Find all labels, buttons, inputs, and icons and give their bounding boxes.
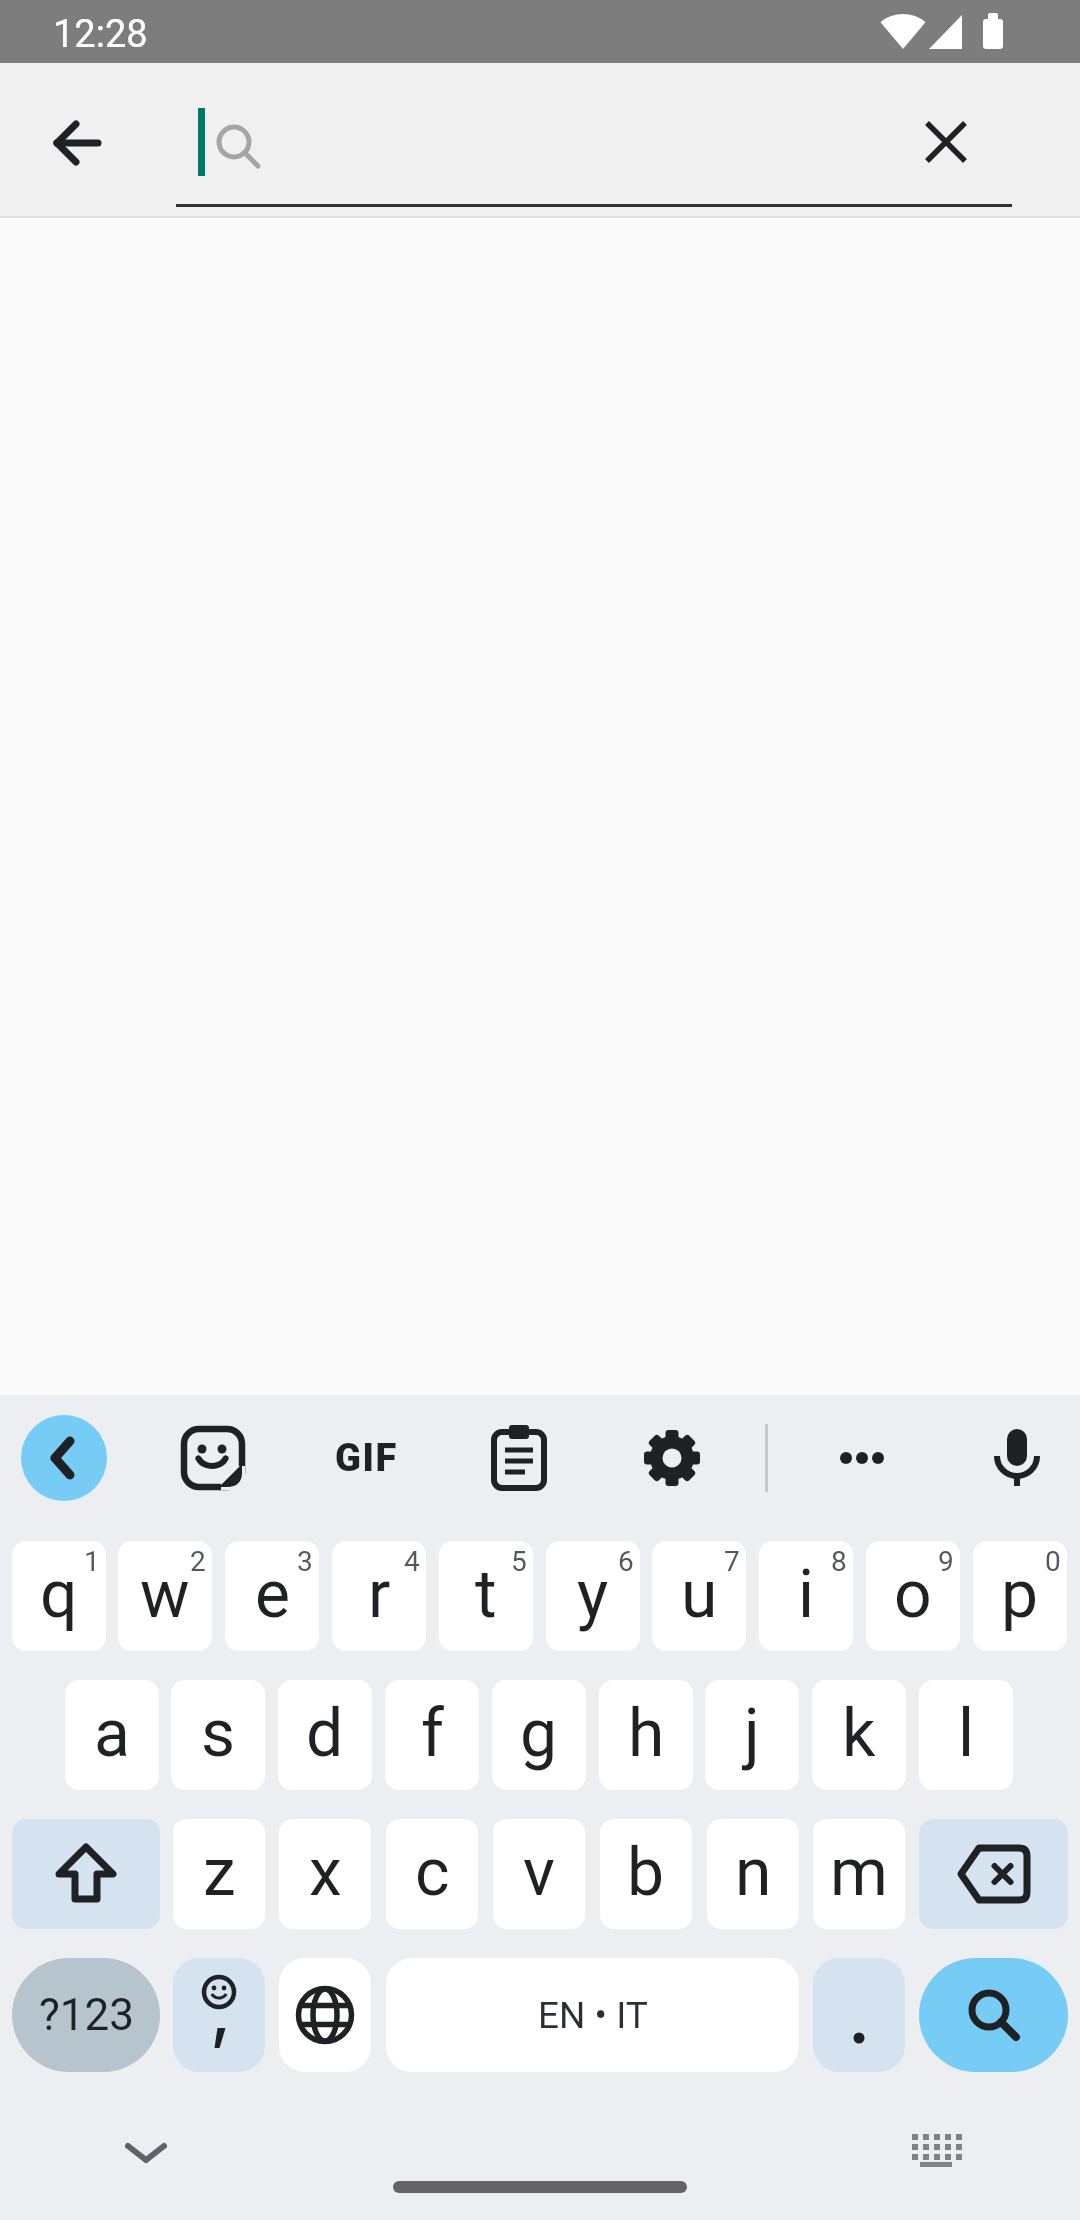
staticText: u [681,1556,718,1633]
button[interactable] [33,99,121,187]
button[interactable]: z [173,1819,265,1929]
staticText: d [306,1695,344,1772]
button[interactable]: g [492,1680,586,1790]
button[interactable] [640,1426,704,1490]
button[interactable] [813,1958,905,2072]
button[interactable]: GIF [316,1418,416,1498]
staticText: t [475,1556,497,1633]
button[interactable]: q [12,1541,106,1651]
button[interactable]: i [759,1541,853,1651]
staticText: r [368,1556,391,1633]
button[interactable]: u [652,1541,746,1651]
staticText: w [140,1556,190,1633]
button[interactable]: b [600,1819,692,1929]
button[interactable]: x [279,1819,371,1929]
button[interactable]: s [171,1680,265,1790]
button[interactable]: k [812,1680,906,1790]
staticText: e [255,1556,290,1633]
button[interactable] [110,2126,182,2178]
staticText: l [958,1695,975,1772]
staticText: c [415,1834,450,1911]
staticText: 7 [724,1545,740,1578]
staticText: 6 [618,1545,634,1578]
button[interactable] [173,1958,265,2072]
staticText: i [798,1556,815,1633]
staticText: 5 [511,1545,527,1578]
button[interactable] [901,97,991,187]
button[interactable] [181,1426,245,1490]
staticText: EN • IT [538,1994,648,2037]
staticText: 2 [190,1545,206,1578]
button[interactable]: r [332,1541,426,1651]
button[interactable]: o [866,1541,960,1651]
button[interactable] [919,1819,1068,1929]
staticText: m [830,1834,888,1911]
staticText: f [421,1695,444,1772]
staticText: h [628,1695,665,1772]
staticText: 3 [297,1545,313,1578]
button[interactable]: f [385,1680,479,1790]
staticText: a [94,1695,130,1772]
staticText: k [842,1695,876,1772]
staticText: 9 [938,1545,954,1578]
button[interactable] [279,1958,371,2072]
button[interactable]: y [546,1541,640,1651]
staticText: j [744,1695,760,1772]
button[interactable]: ?123 [12,1958,160,2072]
staticText: ?123 [39,1989,134,2041]
button[interactable]: t [439,1541,533,1651]
button[interactable]: h [599,1680,693,1790]
button[interactable]: p [973,1541,1067,1651]
staticText: 12:28 [53,12,148,57]
button[interactable] [12,1819,160,1929]
button[interactable] [821,1428,901,1488]
staticText: g [520,1695,558,1772]
staticText: z [203,1834,236,1911]
staticText: 4 [404,1545,420,1578]
button[interactable]: e [225,1541,319,1651]
button[interactable]: j [705,1680,799,1790]
button[interactable]: m [813,1819,905,1929]
staticText: 8 [831,1545,847,1578]
button[interactable] [919,1958,1068,2072]
staticText: p [1001,1556,1039,1633]
button[interactable]: EN • IT [386,1958,799,2072]
button[interactable] [985,1420,1049,1492]
staticText: 0 [1045,1545,1061,1578]
staticText: b [627,1834,665,1911]
button[interactable] [21,1415,107,1501]
button[interactable]: n [707,1819,799,1929]
staticText: 1 [84,1545,100,1578]
staticText: q [40,1556,78,1633]
staticText: v [523,1834,555,1911]
staticText: x [309,1834,342,1911]
button[interactable] [487,1424,551,1492]
button[interactable]: a [65,1680,159,1790]
button[interactable]: c [386,1819,478,1929]
button[interactable]: v [493,1819,585,1929]
button[interactable]: w [118,1541,212,1651]
button[interactable]: l [919,1680,1013,1790]
staticText: s [201,1695,236,1772]
button[interactable] [908,2128,964,2172]
staticText: GIF [335,1436,398,1481]
staticText: n [735,1834,772,1911]
staticText: y [577,1556,609,1633]
staticText: o [894,1556,932,1633]
button[interactable]: d [278,1680,372,1790]
